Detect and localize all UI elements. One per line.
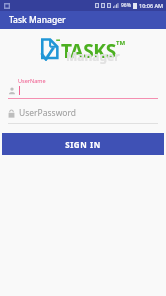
other: Password [8,109,15,118]
staticText: UserPassword [19,107,77,119]
other: User [8,87,16,95]
staticText: 10:06 AM [139,2,164,9]
staticText: Manager [66,48,120,64]
staticText: SIGN IN [65,139,101,150]
staticText: UserName [18,77,46,84]
staticText: TASKS [61,38,116,64]
button[interactable]: SIGN IN [2,133,164,155]
staticText: TM [116,39,126,47]
staticText: 96% [121,2,131,9]
button[interactable]: UserName [8,77,158,99]
staticText: Task Manager [9,14,66,26]
button[interactable]: Password [8,107,158,124]
